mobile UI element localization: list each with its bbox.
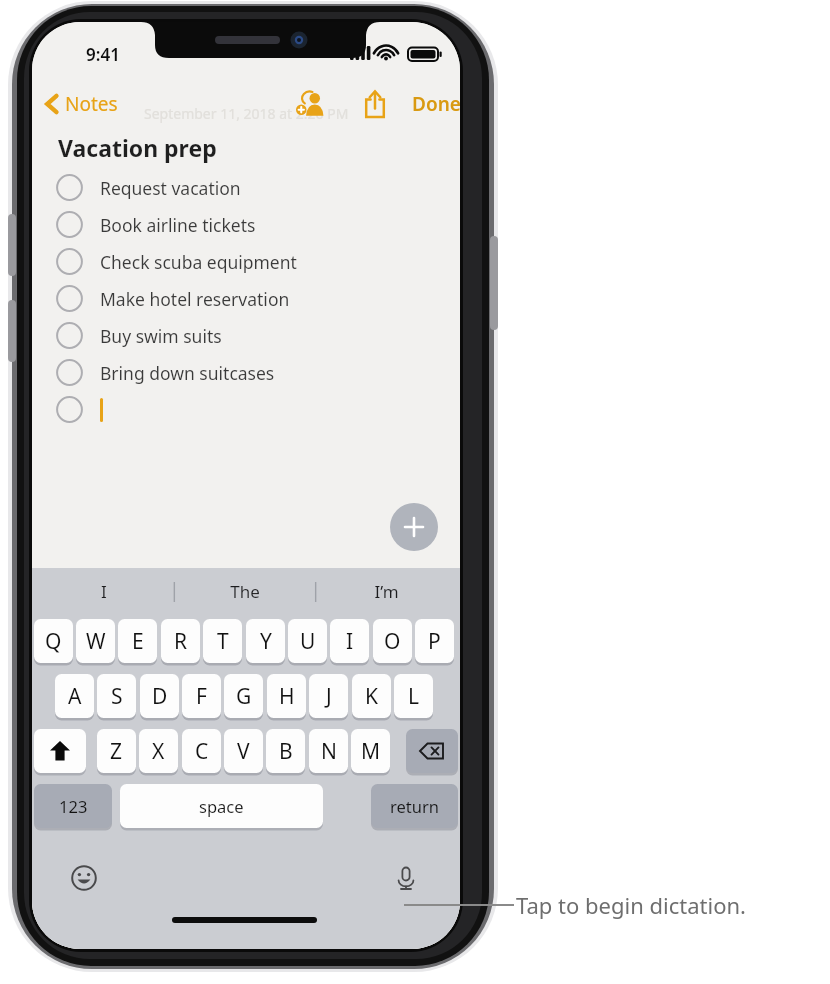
staticText: return bbox=[390, 795, 439, 817]
button[interactable]: E bbox=[118, 619, 157, 663]
staticText: Tap to begin dictation. bbox=[516, 890, 746, 920]
button[interactable]: Z bbox=[97, 729, 136, 773]
staticText: I’m bbox=[374, 580, 399, 603]
staticText: J bbox=[326, 682, 332, 711]
staticText: H bbox=[279, 682, 295, 711]
button[interactable]: K bbox=[352, 674, 391, 718]
button[interactable] bbox=[32, 391, 460, 428]
staticText: I bbox=[101, 580, 107, 603]
staticText: X bbox=[152, 737, 165, 766]
staticText: A bbox=[68, 682, 82, 711]
button[interactable]: Y bbox=[246, 619, 285, 663]
button[interactable]: Add people bbox=[287, 84, 335, 124]
staticText: F bbox=[196, 682, 207, 711]
button[interactable]: Emoji bbox=[62, 856, 106, 900]
button[interactable]: M bbox=[351, 729, 390, 773]
button[interactable]: Dictation bbox=[384, 856, 428, 900]
button[interactable]: Check scuba equipment bbox=[32, 243, 460, 280]
staticText: K bbox=[365, 682, 378, 711]
button[interactable]: I bbox=[33, 568, 174, 615]
button[interactable]: Done bbox=[404, 84, 460, 124]
button[interactable]: Request vacation bbox=[32, 169, 460, 206]
button[interactable]: Share bbox=[352, 82, 398, 126]
staticText: Vacation prep bbox=[58, 132, 217, 163]
button[interactable]: U bbox=[288, 619, 327, 663]
button[interactable]: Buy swim suits bbox=[32, 317, 460, 354]
staticText: 9:41 bbox=[86, 43, 120, 66]
button[interactable]: I’m bbox=[316, 568, 457, 615]
button[interactable]: H bbox=[267, 674, 306, 718]
staticText: Buy swim suits bbox=[100, 324, 222, 348]
button[interactable]: Bring down suitcases bbox=[32, 354, 460, 391]
button[interactable]: Add checklist item bbox=[390, 503, 438, 551]
button[interactable]: Backspace bbox=[406, 729, 458, 773]
staticText: S bbox=[111, 682, 123, 711]
staticText: D bbox=[152, 682, 168, 711]
button[interactable]: A bbox=[55, 674, 94, 718]
staticText: O bbox=[384, 627, 401, 656]
staticText: Make hotel reservation bbox=[100, 287, 290, 311]
button[interactable]: Book airline tickets bbox=[32, 206, 460, 243]
button[interactable]: Notes bbox=[38, 84, 126, 124]
button[interactable]: Make hotel reservation bbox=[32, 280, 460, 317]
staticText: I bbox=[346, 627, 354, 656]
staticText: space bbox=[199, 795, 244, 817]
button[interactable]: 123 bbox=[34, 784, 112, 828]
button[interactable]: W bbox=[76, 619, 115, 663]
staticText: Check scuba equipment bbox=[100, 250, 297, 274]
staticText: M bbox=[361, 737, 381, 766]
staticText: E bbox=[132, 627, 144, 656]
button[interactable]: V bbox=[224, 729, 263, 773]
staticText: Q bbox=[45, 627, 62, 656]
staticText: B bbox=[279, 737, 293, 766]
button[interactable]: L bbox=[394, 674, 433, 718]
staticText: The bbox=[230, 580, 260, 603]
button[interactable]: Q bbox=[34, 619, 73, 663]
staticText: N bbox=[321, 737, 337, 766]
staticText: September 11, 2018 at 2:26 PM bbox=[144, 104, 349, 123]
button[interactable]: space bbox=[120, 784, 323, 828]
button[interactable]: return bbox=[371, 784, 458, 828]
button[interactable]: O bbox=[373, 619, 412, 663]
button[interactable]: B bbox=[266, 729, 305, 773]
button[interactable]: P bbox=[415, 619, 454, 663]
staticText: Request vacation bbox=[100, 176, 241, 200]
staticText: Done bbox=[412, 91, 460, 117]
staticText: L bbox=[408, 682, 420, 711]
staticText: V bbox=[237, 737, 250, 766]
staticText: G bbox=[236, 682, 252, 711]
button[interactable]: J bbox=[309, 674, 348, 718]
staticText: Z bbox=[110, 737, 123, 766]
button[interactable]: D bbox=[140, 674, 179, 718]
button[interactable]: R bbox=[161, 619, 200, 663]
button[interactable]: F bbox=[182, 674, 221, 718]
staticText: Notes bbox=[65, 91, 118, 117]
staticText: 123 bbox=[59, 795, 88, 817]
button[interactable]: Shift bbox=[34, 729, 86, 773]
staticText: Y bbox=[260, 627, 272, 656]
button[interactable]: N bbox=[309, 729, 348, 773]
button[interactable]: I bbox=[330, 619, 369, 663]
button[interactable]: C bbox=[182, 729, 221, 773]
button[interactable]: G bbox=[224, 674, 263, 718]
button[interactable]: S bbox=[97, 674, 136, 718]
staticText: W bbox=[86, 627, 106, 656]
staticText: Bring down suitcases bbox=[100, 361, 275, 385]
staticText: R bbox=[174, 627, 188, 656]
button[interactable]: The bbox=[174, 568, 315, 615]
staticText: P bbox=[428, 627, 441, 656]
staticText: Book airline tickets bbox=[100, 213, 256, 237]
staticText: U bbox=[300, 627, 316, 656]
staticText: T bbox=[217, 627, 229, 656]
button[interactable]: X bbox=[139, 729, 178, 773]
button[interactable]: T bbox=[203, 619, 242, 663]
staticText: C bbox=[195, 737, 209, 766]
